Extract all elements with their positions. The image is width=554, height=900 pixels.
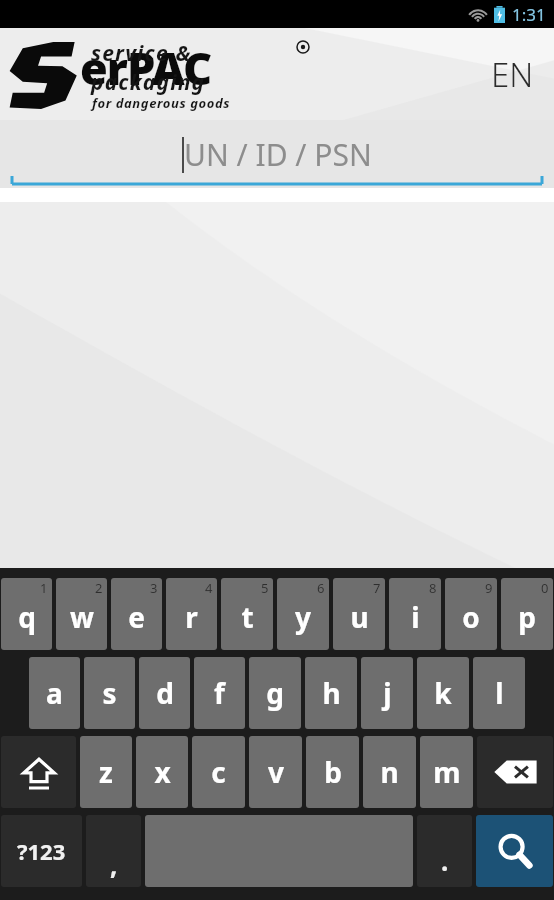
button[interactable]: Search	[476, 815, 553, 887]
button[interactable]: h	[305, 657, 357, 729]
staticText: 1:31	[512, 3, 546, 26]
button[interactable]: 3	[111, 578, 162, 650]
staticText: ,	[110, 847, 118, 882]
staticText: service & packaging	[91, 39, 311, 97]
staticText: b	[324, 753, 342, 791]
button[interactable]: d	[139, 657, 190, 729]
button[interactable]: n	[363, 736, 416, 808]
staticText: a	[46, 674, 63, 712]
staticText: 7	[373, 579, 381, 597]
button[interactable]: c	[192, 736, 245, 808]
staticText: 2	[95, 579, 103, 597]
staticText: 3	[150, 579, 158, 597]
button[interactable]: 7	[333, 578, 385, 650]
button[interactable]: ?123	[1, 815, 82, 887]
button[interactable]: 0	[501, 578, 553, 650]
button[interactable]: 2	[56, 578, 107, 650]
staticText: n	[380, 753, 399, 791]
button[interactable]: x	[136, 736, 188, 808]
button[interactable]: s	[84, 657, 135, 729]
staticText: k	[434, 674, 452, 712]
button[interactable]: f	[194, 657, 245, 729]
staticText: 1	[40, 579, 48, 597]
staticText: 0	[541, 579, 549, 597]
button[interactable]: j	[361, 657, 413, 729]
staticText: for dangerous goods	[92, 94, 231, 112]
staticText: 9	[485, 579, 493, 597]
staticText: .	[441, 843, 449, 878]
staticText: w	[70, 598, 94, 636]
staticText: q	[18, 598, 36, 636]
staticText: t	[241, 598, 254, 636]
button[interactable]: ,	[86, 815, 141, 887]
button[interactable]: g	[249, 657, 301, 729]
button[interactable]: 4	[166, 578, 217, 650]
button[interactable]: Backspace	[477, 736, 553, 808]
button[interactable]: UN / ID / PSN	[0, 120, 554, 188]
staticText: x	[154, 753, 171, 791]
staticText: s	[102, 674, 117, 712]
staticText: d	[156, 674, 174, 712]
staticText: z	[99, 753, 113, 791]
button[interactable]: 5	[221, 578, 273, 650]
staticText: p	[518, 598, 536, 636]
staticText: f	[214, 674, 225, 712]
button[interactable]: a	[29, 657, 80, 729]
button[interactable]: 6	[277, 578, 329, 650]
staticText: 8	[429, 579, 437, 597]
button[interactable]: b	[306, 736, 359, 808]
staticText: v	[268, 753, 284, 791]
button[interactable]: Shift	[1, 736, 76, 808]
button[interactable]: m	[420, 736, 473, 808]
staticText: l	[495, 674, 504, 712]
button[interactable]: 1	[1, 578, 52, 650]
staticText: EN	[491, 52, 534, 97]
staticText: y	[295, 598, 311, 636]
staticText: c	[211, 753, 226, 791]
button[interactable]: .	[417, 815, 472, 887]
button[interactable]: k	[417, 657, 469, 729]
staticText: erPAC	[80, 37, 212, 98]
staticText: 4	[205, 579, 213, 597]
button[interactable]: 8	[389, 578, 441, 650]
staticText: r	[185, 598, 198, 636]
staticText: o	[462, 598, 480, 636]
staticText: j	[383, 674, 392, 712]
staticText: i	[411, 598, 420, 636]
staticText: g	[266, 674, 284, 712]
staticText: 5	[261, 579, 269, 597]
button[interactable]: z	[80, 736, 132, 808]
staticText: ?123	[17, 836, 66, 866]
staticText: u	[350, 598, 369, 636]
button[interactable]: 9	[445, 578, 497, 650]
staticText: m	[433, 753, 461, 791]
staticText: e	[128, 598, 145, 636]
staticText: 6	[317, 579, 325, 597]
staticText: h	[322, 674, 341, 712]
button[interactable]: v	[249, 736, 302, 808]
button[interactable]: EN	[485, 46, 540, 103]
button[interactable]: l	[473, 657, 525, 729]
staticText: UN / ID / PSN	[184, 134, 372, 175]
